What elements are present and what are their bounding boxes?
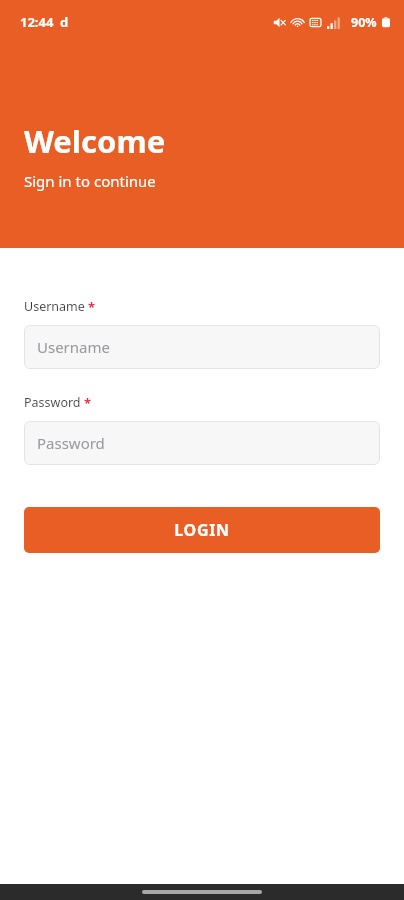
staticText: *: [88, 298, 96, 316]
staticText: LOGIN: [174, 519, 230, 541]
staticText: d: [60, 13, 69, 31]
staticText: Password: [37, 433, 105, 453]
button[interactable]: Password: [24, 421, 380, 465]
staticText: *: [84, 394, 92, 412]
button[interactable]: Username: [24, 325, 380, 369]
button[interactable]: LOGIN: [24, 507, 380, 553]
staticText: Welcome: [24, 120, 166, 162]
staticText: Sign in to continue: [24, 171, 156, 191]
staticText: Username: [24, 298, 85, 315]
staticText: 12:44: [20, 13, 54, 31]
staticText: 90%: [351, 14, 377, 31]
staticText: Username: [37, 337, 110, 357]
staticText: Password: [24, 394, 81, 411]
